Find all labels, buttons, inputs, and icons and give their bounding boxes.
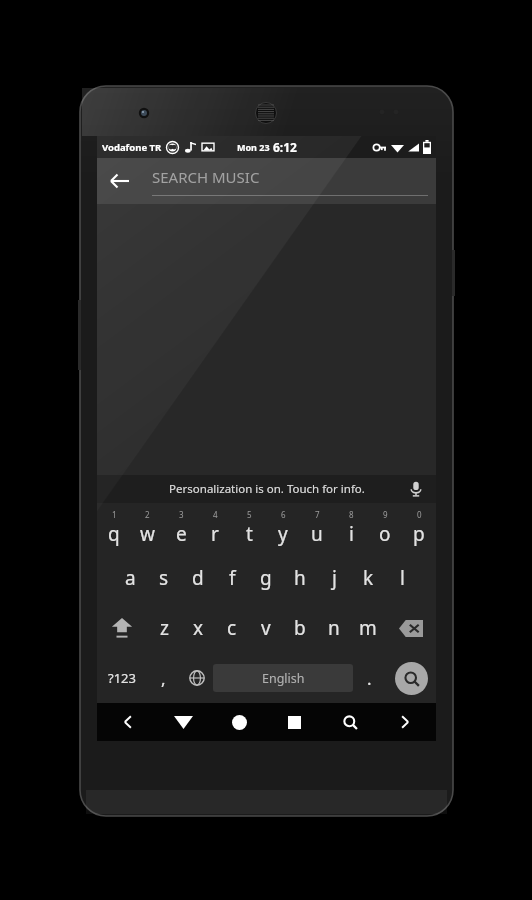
button[interactable]: Hide keyboard	[158, 703, 208, 741]
staticText: l	[400, 565, 405, 591]
staticText: p	[413, 521, 425, 547]
staticText: English	[262, 670, 305, 687]
button[interactable]: s	[147, 553, 181, 603]
staticText: Vodafone TR	[102, 141, 162, 154]
button[interactable]: x	[181, 603, 215, 653]
staticText: o	[379, 521, 391, 547]
button[interactable]: Back	[97, 159, 141, 203]
button[interactable]: 7	[300, 503, 334, 553]
button[interactable]: h	[283, 553, 317, 603]
button[interactable]: Search	[325, 703, 375, 741]
staticText: a	[125, 565, 136, 591]
button[interactable]: 6	[266, 503, 300, 553]
button[interactable]: m	[351, 603, 385, 653]
staticText: c	[227, 615, 237, 641]
staticText: e	[176, 521, 187, 547]
button[interactable]: 9	[368, 503, 402, 553]
button[interactable]: Shift	[97, 603, 147, 653]
button[interactable]: Search	[386, 653, 436, 703]
staticText: 0	[417, 509, 422, 520]
staticText: z	[160, 615, 169, 641]
staticText: 3	[179, 509, 184, 520]
staticText: r	[211, 521, 219, 547]
button[interactable]: Voice input	[406, 479, 426, 499]
staticText: 4	[213, 509, 218, 520]
staticText: 6:12	[273, 139, 297, 155]
button[interactable]: Home	[214, 703, 264, 741]
staticText: k	[363, 565, 374, 591]
staticText: f	[229, 565, 236, 591]
staticText: m	[359, 615, 377, 641]
button[interactable]: g	[249, 553, 283, 603]
button[interactable]: 8	[334, 503, 368, 553]
button[interactable]: n	[317, 603, 351, 653]
staticText: i	[349, 521, 354, 547]
button[interactable]: Previous	[103, 703, 153, 741]
button[interactable]: c	[215, 603, 249, 653]
button[interactable]: English	[213, 664, 353, 692]
button[interactable]: b	[283, 603, 317, 653]
button[interactable]: z	[147, 603, 181, 653]
button[interactable]: ,	[147, 653, 180, 703]
button[interactable]: f	[215, 553, 249, 603]
staticText: s	[159, 565, 169, 591]
staticText: u	[311, 521, 323, 547]
button[interactable]: .	[353, 653, 386, 703]
button[interactable]: ?123	[97, 653, 147, 703]
button[interactable]: 3	[164, 503, 198, 553]
staticText: b	[294, 615, 306, 641]
staticText: t	[246, 521, 253, 547]
button[interactable]: 0	[402, 503, 436, 553]
staticText: 6	[281, 509, 286, 520]
button[interactable]: 2	[130, 503, 164, 553]
staticText: w	[140, 521, 155, 547]
button[interactable]: Personalization is on. Touch for info.	[169, 481, 365, 497]
staticText: y	[278, 521, 288, 547]
button[interactable]: Recents	[269, 703, 319, 741]
staticText: n	[328, 615, 340, 641]
button[interactable]: l	[385, 553, 419, 603]
staticText: 1	[112, 509, 117, 520]
staticText: d	[192, 565, 204, 591]
button[interactable]: j	[317, 553, 351, 603]
button[interactable]: v	[249, 603, 283, 653]
button[interactable]: Backspace	[385, 603, 436, 653]
staticText: 5	[247, 509, 252, 520]
staticText: 7	[315, 509, 320, 520]
staticText: .	[367, 667, 372, 690]
button[interactable]: a	[113, 553, 147, 603]
staticText: 9	[383, 509, 388, 520]
staticText: v	[261, 615, 271, 641]
staticText: 2	[145, 509, 150, 520]
staticText: h	[294, 565, 306, 591]
staticText: SEARCH MUSIC	[152, 167, 260, 187]
staticText: 8	[349, 509, 354, 520]
button[interactable]: 5	[232, 503, 266, 553]
button[interactable]: 4	[198, 503, 232, 553]
staticText: Mon 23	[237, 141, 270, 153]
staticText: x	[193, 615, 204, 641]
staticText: ?123	[108, 669, 136, 687]
staticText: q	[108, 521, 120, 547]
staticText: j	[332, 565, 337, 591]
button[interactable]: d	[181, 553, 215, 603]
staticText: ,	[161, 667, 166, 690]
button[interactable]: Next	[380, 703, 430, 741]
button[interactable]: Change language	[180, 653, 213, 703]
button[interactable]: 1	[97, 503, 130, 553]
button[interactable]: k	[351, 553, 385, 603]
button[interactable]: SEARCH MUSIC	[152, 167, 428, 196]
staticText: g	[260, 565, 272, 591]
